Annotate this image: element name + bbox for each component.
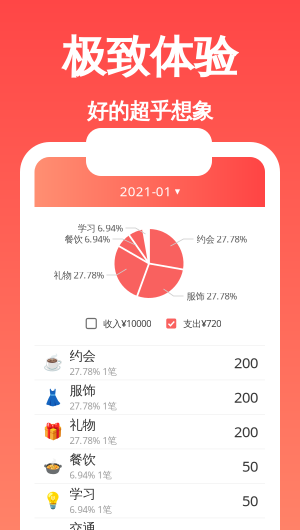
- staticText: 200: [234, 422, 258, 441]
- staticText: 50: [242, 456, 258, 476]
- staticText: 约会 27.78%: [196, 233, 247, 245]
- staticText: 🎁: [42, 422, 62, 441]
- staticText: 27.78% 1笔: [69, 434, 116, 446]
- staticText: 好的超乎想象: [87, 98, 213, 124]
- staticText: 餐饮: [69, 451, 95, 468]
- staticText: 200: [234, 353, 258, 372]
- staticText: 礼物: [69, 417, 95, 433]
- staticText: 极致体验: [62, 30, 238, 84]
- staticText: 2021-01: [120, 182, 172, 200]
- staticText: 27.78% 1笔: [69, 400, 116, 412]
- staticText: 6.94% 1笔: [69, 469, 111, 481]
- staticText: 服饰: [69, 382, 95, 399]
- staticText: 💡: [42, 491, 62, 510]
- staticText: 200: [234, 387, 258, 407]
- staticText: 👗: [42, 388, 62, 406]
- staticText: 学习: [69, 486, 95, 502]
- staticText: 🍲: [42, 457, 62, 475]
- button[interactable]: 💡: [34, 484, 265, 518]
- staticText: 支出¥720: [183, 317, 221, 330]
- staticText: ☕: [42, 353, 62, 372]
- button[interactable]: 收入¥10000: [86, 317, 151, 330]
- staticText: 学习 6.94%: [77, 222, 123, 234]
- button[interactable]: 🎁: [34, 415, 265, 449]
- staticText: 50: [242, 491, 258, 510]
- button[interactable]: ☕: [34, 346, 265, 380]
- staticText: 交通: [69, 520, 95, 530]
- button[interactable]: 🚌: [34, 518, 265, 530]
- staticText: ▾: [175, 185, 180, 197]
- staticText: 礼物 27.78%: [53, 269, 104, 281]
- staticText: 约会: [69, 348, 95, 364]
- staticText: 服饰 27.78%: [186, 290, 237, 302]
- button[interactable]: 👗: [34, 380, 265, 415]
- staticText: 餐饮 6.94%: [64, 233, 110, 245]
- button[interactable]: 支出¥720: [166, 317, 221, 330]
- staticText: 6.94% 1笔: [69, 503, 111, 515]
- button[interactable]: 🍲: [34, 449, 265, 484]
- staticText: 收入¥10000: [103, 317, 151, 330]
- staticText: 27.78% 1笔: [69, 365, 116, 377]
